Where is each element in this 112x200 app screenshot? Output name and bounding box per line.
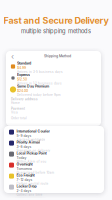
staticText: Guaranteed before 10am bbox=[16, 171, 54, 174]
staticText: Visa bbox=[11, 110, 18, 114]
staticText: Overnight bbox=[16, 162, 32, 166]
staticText: Arrives in 1-2 business days bbox=[17, 82, 62, 85]
button[interactable]: Same Day Premium bbox=[9, 84, 98, 95]
button[interactable]: Locker Drop bbox=[9, 184, 99, 194]
button[interactable]: Priority Airmail bbox=[9, 140, 99, 150]
button[interactable]: Eco Freight bbox=[9, 173, 99, 183]
staticText: Within 4 km of you bbox=[16, 160, 46, 163]
staticText: Priority Airmail bbox=[16, 140, 40, 144]
staticText: Eco Freight bbox=[16, 173, 34, 177]
button[interactable]: Local Pickup Point bbox=[9, 151, 99, 161]
staticText: Signature on delivery bbox=[16, 149, 50, 152]
staticText: Arrives in 3-5 business days bbox=[17, 70, 63, 74]
staticText: Locker Drop bbox=[16, 184, 36, 188]
staticText: Delivery address bbox=[11, 97, 38, 101]
staticText: Order total bbox=[11, 116, 27, 120]
staticText: Home bbox=[11, 101, 20, 104]
staticText: Local Pickup Point bbox=[16, 151, 46, 155]
staticText: 5-9 days bbox=[16, 134, 31, 138]
staticText: Fast and Secure Delivery bbox=[3, 15, 108, 26]
staticText: ‹ bbox=[11, 51, 14, 61]
button[interactable]: Express bbox=[9, 72, 98, 84]
staticText: Tracked worldwide bbox=[16, 138, 45, 141]
staticText: International Courier bbox=[16, 129, 49, 133]
staticText: Payment bbox=[11, 107, 25, 110]
staticText: Tomorrow bbox=[16, 167, 32, 171]
staticText: Standard bbox=[17, 61, 31, 65]
staticText: 7-12 days bbox=[16, 178, 32, 182]
staticText: $24.00 bbox=[17, 89, 28, 93]
staticText: Today bbox=[16, 156, 26, 160]
staticText: 3-6 days bbox=[16, 145, 31, 149]
button[interactable]: International Courier bbox=[9, 129, 99, 139]
staticText: Shipping Method bbox=[44, 54, 71, 58]
staticText: Delivered today before 9pm bbox=[17, 93, 61, 97]
staticText: Express bbox=[17, 72, 30, 77]
button[interactable]: Standard bbox=[9, 61, 98, 72]
staticText: Collect any time bbox=[16, 193, 42, 196]
staticText: $12.50 bbox=[17, 77, 27, 81]
button[interactable]: Back bbox=[10, 53, 15, 59]
staticText: Carbon neutral route bbox=[16, 182, 48, 185]
staticText: multiple shipping methods bbox=[21, 28, 91, 35]
staticText: 2-4 days bbox=[16, 189, 31, 193]
staticText: $4.99 bbox=[17, 66, 26, 70]
button[interactable]: Overnight bbox=[9, 162, 99, 172]
staticText: Same Day Premium bbox=[17, 84, 49, 88]
